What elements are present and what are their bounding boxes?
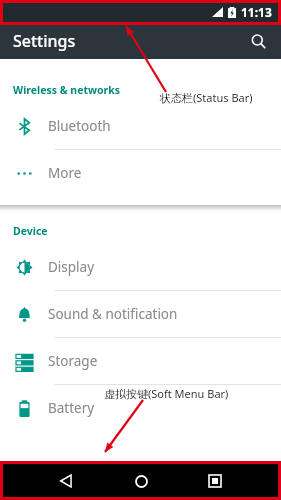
button[interactable]: Display bbox=[0, 244, 281, 290]
button[interactable]: Search bbox=[245, 28, 271, 54]
staticText: Storage bbox=[48, 352, 98, 370]
button[interactable]: Storage bbox=[0, 338, 281, 384]
staticText: 11:13 bbox=[241, 4, 272, 20]
staticText: 状态栏(Status Bar) bbox=[160, 90, 253, 105]
button[interactable]: Battery bbox=[0, 385, 281, 431]
staticText: Device bbox=[13, 224, 48, 238]
staticText: Sound & notification bbox=[48, 305, 178, 323]
staticText: Bluetooth bbox=[48, 117, 111, 135]
staticText: More bbox=[48, 164, 82, 182]
staticText: Battery bbox=[48, 399, 95, 417]
staticText: 虚拟按键(Soft Menu Bar) bbox=[104, 386, 229, 401]
staticText: Display bbox=[48, 258, 95, 276]
button[interactable]: Sound & notification bbox=[0, 291, 281, 337]
button[interactable]: Recent apps bbox=[199, 465, 231, 497]
staticText: Wireless & networks bbox=[13, 83, 120, 97]
button[interactable]: Back bbox=[50, 465, 82, 497]
staticText: Settings bbox=[13, 30, 76, 52]
button[interactable]: Bluetooth bbox=[0, 103, 281, 149]
button[interactable]: Home bbox=[125, 465, 157, 497]
button[interactable]: More bbox=[0, 150, 281, 196]
